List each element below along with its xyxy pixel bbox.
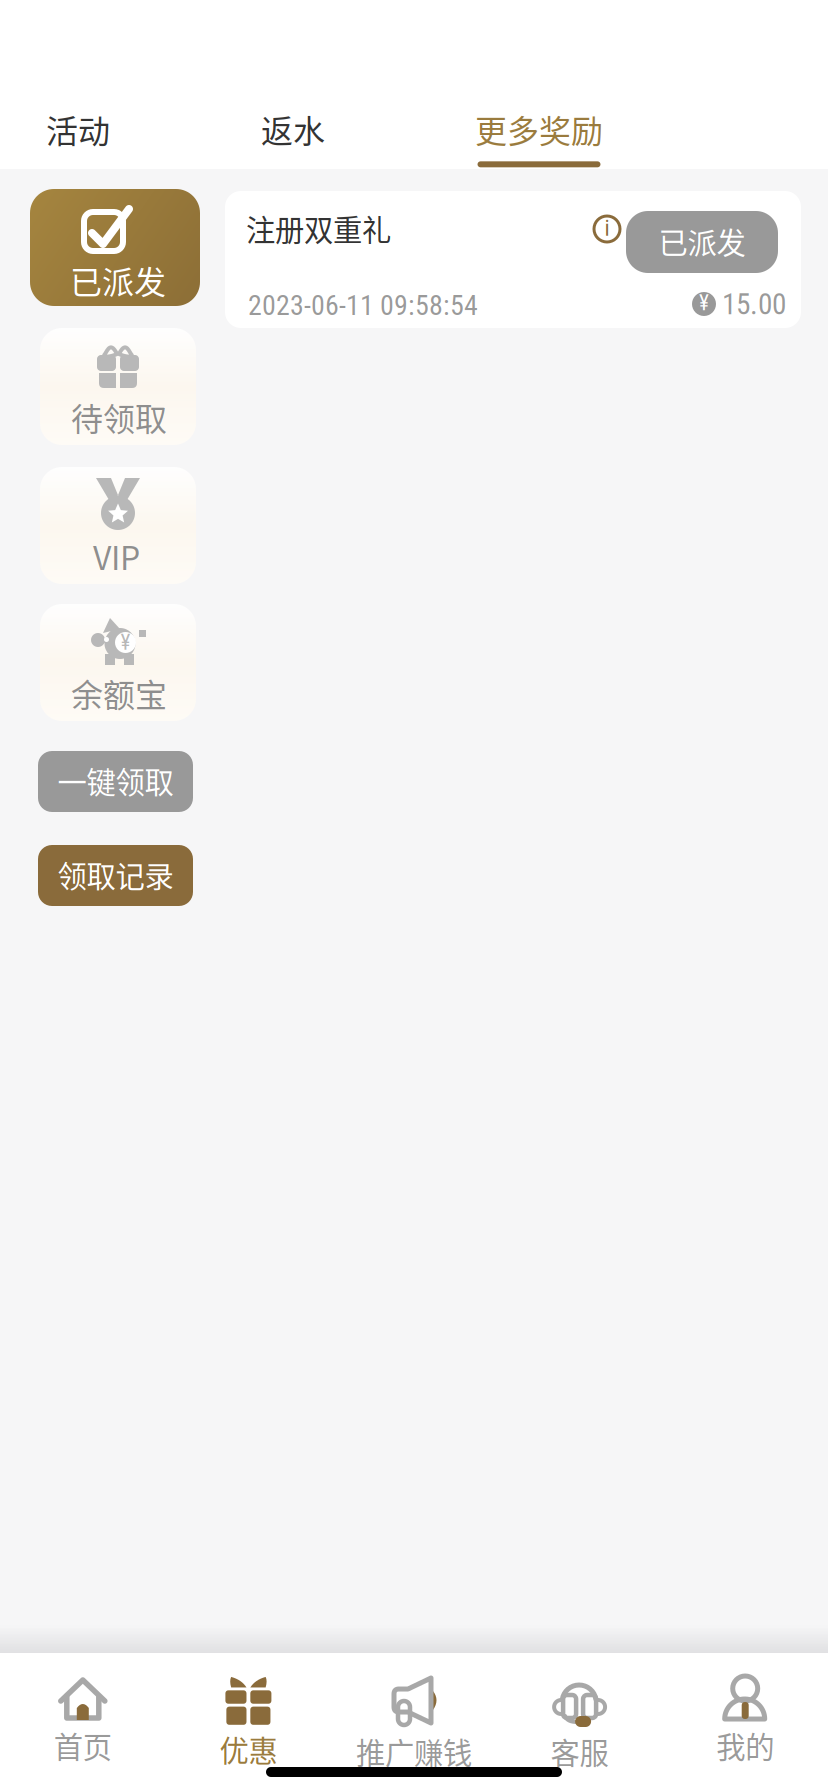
staticText: ¥ bbox=[120, 630, 130, 655]
button[interactable]: 一键领取 bbox=[38, 751, 193, 812]
button[interactable]: 我的 bbox=[662, 1653, 828, 1792]
staticText: 15.00 bbox=[722, 287, 786, 321]
staticText: 一键领取 bbox=[57, 759, 173, 802]
button[interactable]: 待领取 bbox=[40, 328, 196, 445]
staticText: 注册双重礼 bbox=[246, 207, 391, 249]
button[interactable]: 客服 bbox=[497, 1653, 662, 1792]
staticText: ¥ bbox=[699, 290, 709, 315]
button[interactable]: 已派发 bbox=[626, 211, 778, 273]
staticText: 首页 bbox=[54, 1724, 112, 1766]
button[interactable]: 返水 bbox=[261, 106, 325, 152]
staticText: 待领取 bbox=[71, 394, 167, 440]
staticText: 返水 bbox=[261, 106, 325, 152]
staticText: 推广赚钱 bbox=[356, 1730, 472, 1772]
staticText: 2023-06-11 09:58:54 bbox=[248, 289, 478, 322]
staticText: i bbox=[604, 215, 609, 241]
button[interactable]: 活动 bbox=[46, 106, 110, 152]
staticText: 领取记录 bbox=[57, 853, 173, 896]
staticText: 客服 bbox=[551, 1730, 609, 1772]
button[interactable]: ¥ bbox=[40, 604, 196, 721]
staticText: 已派发 bbox=[658, 220, 745, 262]
button[interactable]: VIP bbox=[40, 467, 196, 584]
button[interactable]: 首页 bbox=[0, 1653, 166, 1792]
button[interactable]: 推广赚钱 bbox=[331, 1653, 497, 1792]
staticText: 活动 bbox=[46, 106, 110, 152]
staticText: 更多奖励 bbox=[475, 106, 603, 152]
button[interactable]: 更多奖励 bbox=[475, 106, 603, 167]
staticText: 优惠 bbox=[219, 1728, 277, 1770]
staticText: VIP bbox=[93, 533, 140, 579]
button[interactable]: 领取记录 bbox=[38, 845, 193, 906]
staticText: 我的 bbox=[716, 1724, 774, 1766]
staticText: 已派发 bbox=[70, 257, 166, 303]
button[interactable]: 已派发 bbox=[30, 189, 200, 306]
staticText: 余额宝 bbox=[71, 670, 167, 716]
button[interactable]: 优惠 bbox=[166, 1653, 331, 1792]
